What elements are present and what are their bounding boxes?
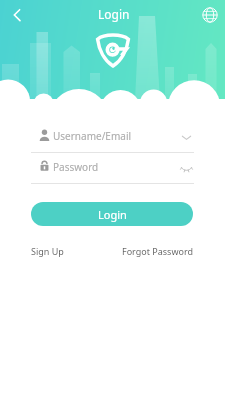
button[interactable]: Back [0, 0, 34, 30]
staticText: Username/Email [53, 129, 132, 143]
button[interactable]: Language [194, 0, 225, 30]
button[interactable]: Forgot Password [122, 245, 194, 257]
button[interactable]: Sign Up [31, 245, 64, 257]
staticText: Forgot Password [122, 245, 194, 257]
button[interactable]: Password [31, 158, 194, 184]
staticText: Password [53, 160, 99, 174]
staticText: Login [98, 6, 130, 22]
staticText: Sign Up [31, 245, 64, 257]
button[interactable]: Login [31, 202, 193, 226]
staticText: Login [98, 207, 127, 222]
button[interactable]: Username/Email [31, 127, 194, 153]
